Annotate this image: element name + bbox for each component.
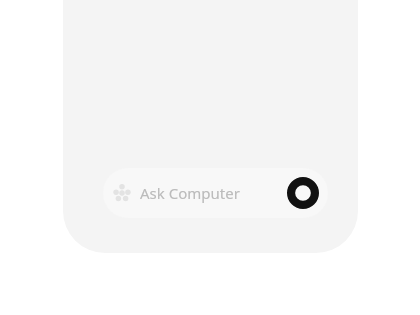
staticText: Ask Computer xyxy=(140,183,240,203)
button[interactable]: Ask Computer xyxy=(103,168,328,218)
button[interactable]: Start voice input xyxy=(287,177,319,209)
